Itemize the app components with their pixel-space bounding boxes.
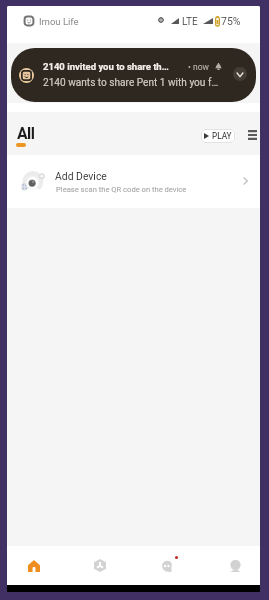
button[interactable]: All <box>17 124 35 143</box>
button[interactable]: Profile <box>209 546 260 585</box>
button[interactable]: Add Device <box>7 155 260 208</box>
staticText: 75% <box>221 15 241 27</box>
staticText: LTE <box>182 16 198 28</box>
button[interactable]: Devices <box>74 546 126 585</box>
staticText: 2140 invited you to share th… <box>43 61 169 72</box>
staticText: All <box>17 124 35 143</box>
button[interactable]: 2140 invited you to share th… <box>11 48 256 102</box>
button[interactable]: PLAY <box>201 129 235 143</box>
button[interactable]: Messages <box>141 546 193 585</box>
button[interactable]: Expand notification <box>233 67 247 81</box>
staticText: PLAY <box>212 131 232 141</box>
staticText: Please scan the QR code on the device <box>56 185 187 194</box>
button[interactable]: Home <box>8 546 60 585</box>
staticText: Imou Life <box>39 16 79 27</box>
staticText: • now <box>188 62 209 72</box>
button[interactable]: Menu <box>242 125 260 145</box>
staticText: Add Device <box>55 170 107 182</box>
staticText: 2140 wants to share Pent 1 with you f… <box>43 77 219 89</box>
